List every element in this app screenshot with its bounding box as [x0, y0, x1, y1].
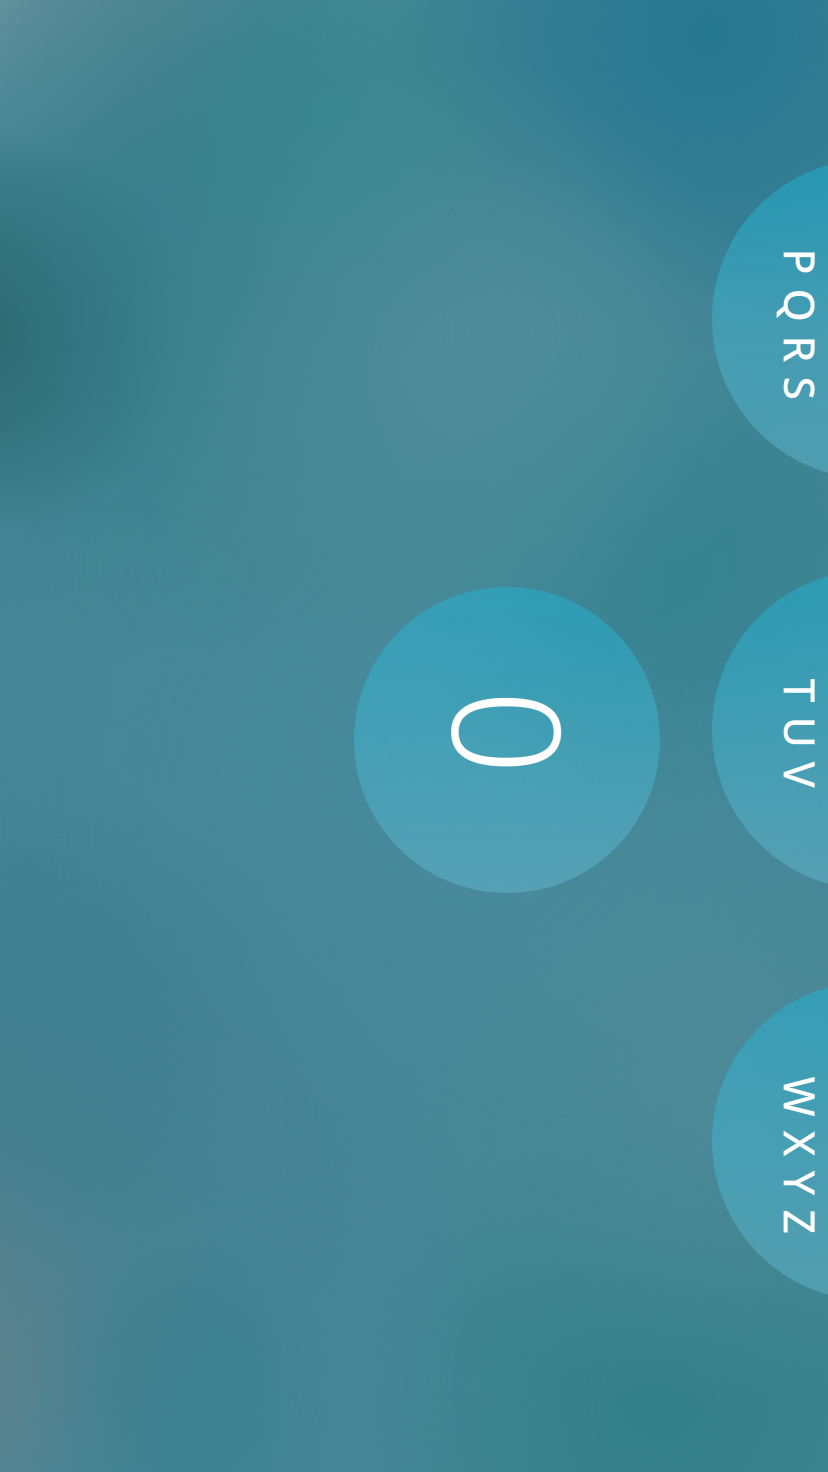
button[interactable]: 9 WXYZ [712, 981, 828, 1301]
button[interactable]: 8 TUV [712, 570, 828, 890]
staticText: WXYZ [721, 1127, 828, 1183]
button[interactable]: 7 PQRS [712, 159, 828, 479]
staticText: TUV [745, 705, 828, 761]
staticText: 0 [467, 633, 552, 831]
staticText: PQRS [724, 296, 828, 352]
button[interactable]: 0 [354, 587, 660, 893]
